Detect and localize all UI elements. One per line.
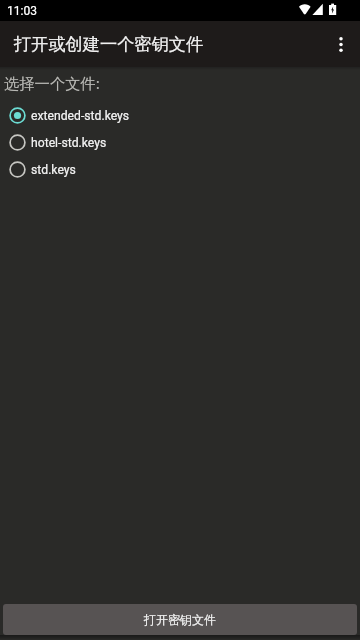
button[interactable]: 打开密钥文件 [3, 604, 357, 635]
staticText: extended-std.keys [31, 109, 130, 123]
staticText: 打开密钥文件 [144, 612, 216, 627]
staticText: 选择一个文件: [4, 73, 100, 94]
button[interactable]: hotel-std.keys [0, 129, 360, 156]
staticText: std.keys [31, 163, 76, 177]
button[interactable]: extended-std.keys [0, 102, 360, 129]
staticText: hotel-std.keys [31, 136, 107, 150]
button[interactable]: More options [322, 25, 360, 63]
button[interactable]: std.keys [0, 156, 360, 183]
staticText: 11:03 [7, 4, 37, 18]
staticText: 打开或创建一个密钥文件 [14, 33, 204, 55]
